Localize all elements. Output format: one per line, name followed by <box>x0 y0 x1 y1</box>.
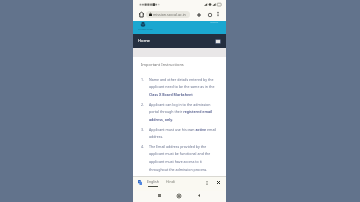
button[interactable]: Close <box>215 179 222 186</box>
staticText: 1. <box>141 77 144 82</box>
button[interactable]: Home <box>136 36 152 46</box>
button[interactable]: mission.sxccal.ac.in <box>146 11 190 18</box>
staticText: Home <box>138 38 150 44</box>
staticText: Important Instructions <box>141 62 184 67</box>
staticText: mission.sxccal.ac.in <box>153 12 186 17</box>
staticText: English <box>147 179 159 184</box>
button[interactable]: Google Translate <box>136 179 143 186</box>
button[interactable]: Back <box>195 192 202 199</box>
staticText: 3. <box>141 127 144 132</box>
staticText: 4. <box>141 144 144 149</box>
staticText: Name and other details entered by the ap… <box>149 77 220 97</box>
button[interactable]: Tabs <box>205 10 214 19</box>
button[interactable]: Menu <box>215 39 221 44</box>
button[interactable]: New tab <box>194 10 203 19</box>
button[interactable]: Hindi <box>166 179 175 184</box>
button[interactable]: Home <box>137 10 146 19</box>
staticText: The Email address provided by the applic… <box>149 144 220 172</box>
staticText: 2. <box>141 102 144 107</box>
button[interactable]: More options <box>203 179 210 186</box>
button[interactable]: Recents <box>156 192 163 199</box>
staticText: ST. XAVIER'S COLLEGE <box>138 28 153 30</box>
staticText: Applicant must use his own active email … <box>149 127 220 139</box>
staticText: Helpline <box>210 21 219 24</box>
button[interactable]: English <box>147 179 159 187</box>
button[interactable]: More options <box>214 10 222 18</box>
button[interactable]: Home <box>175 192 182 199</box>
staticText: Applicant can log in to the admission po… <box>149 102 220 122</box>
staticText: Hindi <box>166 179 175 184</box>
